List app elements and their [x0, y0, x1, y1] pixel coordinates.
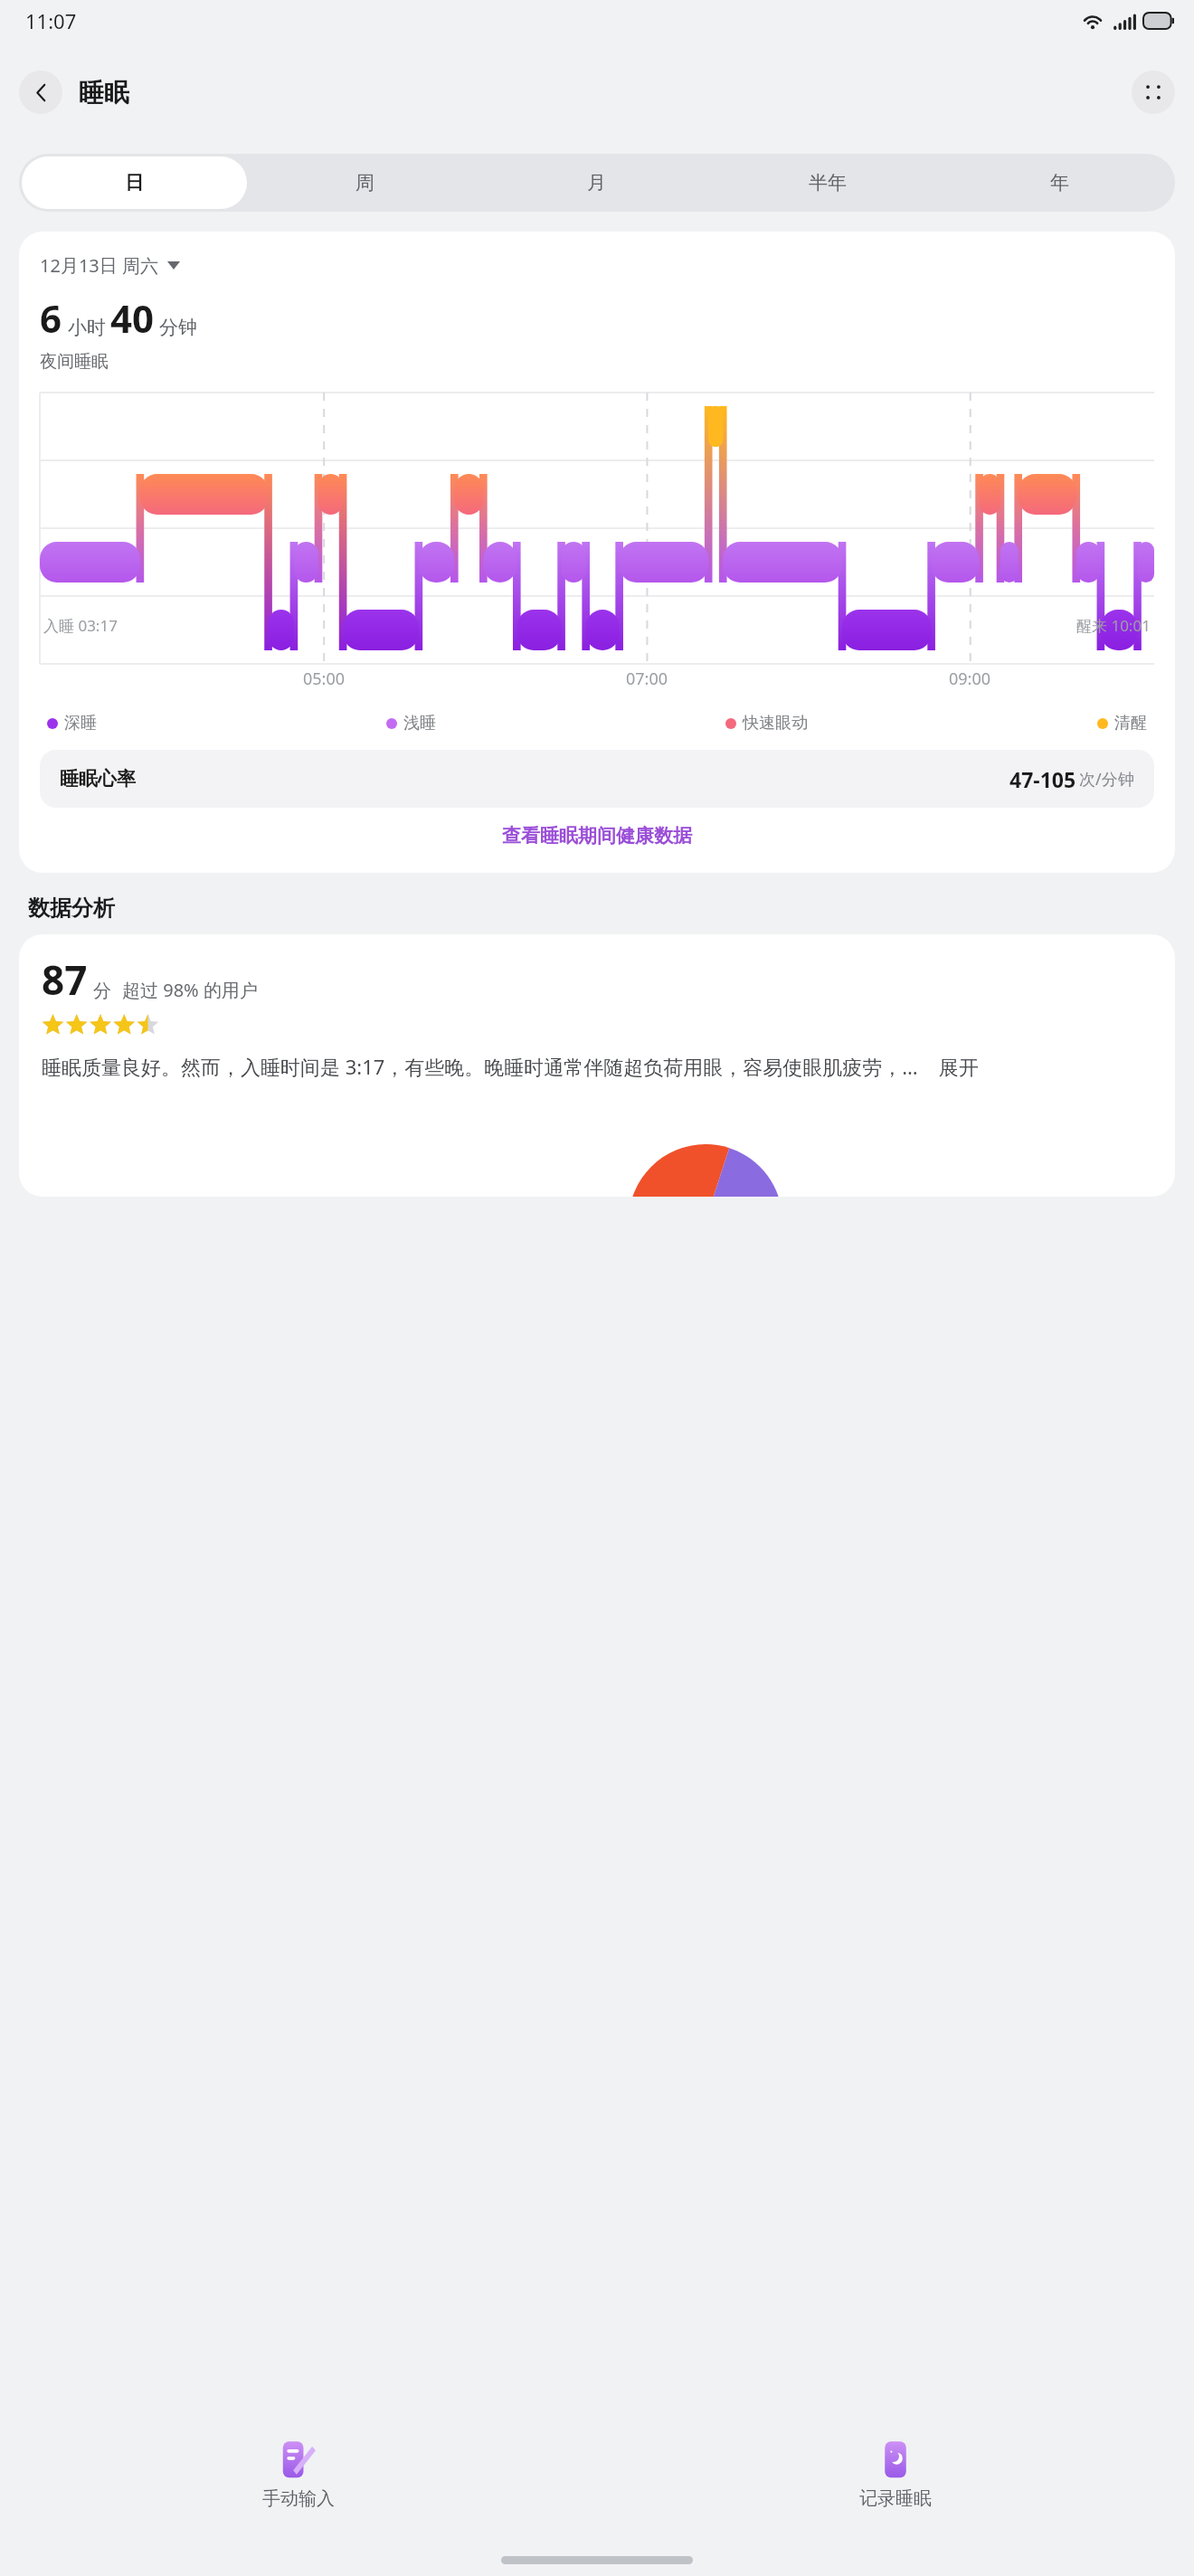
- staticText: 87: [42, 952, 88, 1007]
- staticText: 11:07: [25, 7, 77, 34]
- staticText: 分钟: [159, 316, 197, 339]
- button[interactable]: 年: [946, 156, 1172, 209]
- staticText: 周: [355, 171, 374, 194]
- staticText: 睡眠质量良好。然而，入睡时间是 3:17，有些晚。晚睡时通常伴随超负荷用眼，容易…: [42, 1053, 979, 1080]
- staticText: 日: [125, 171, 144, 194]
- staticText: 小时: [68, 316, 106, 339]
- staticText: 睡眠心率: [60, 767, 136, 791]
- staticText: 月: [587, 171, 606, 194]
- button[interactable]: 睡眠心率: [40, 750, 1154, 808]
- staticText: 夜间睡眠: [40, 351, 109, 373]
- staticText: 查看睡眠期间健康数据: [502, 824, 692, 848]
- staticText: 记录睡眠: [859, 2487, 932, 2510]
- staticText: 深睡: [64, 713, 97, 734]
- staticText: 醒来 10:01: [1076, 615, 1151, 636]
- button[interactable]: 日: [22, 156, 247, 209]
- staticText: 09:00: [949, 668, 991, 690]
- staticText: 05:00: [303, 668, 346, 690]
- staticText: 12月13日 周六: [40, 253, 158, 278]
- staticText: 超过 98% 的用户: [122, 978, 258, 1002]
- button[interactable]: 返回: [19, 71, 62, 114]
- button[interactable]: 查看睡眠期间健康数据: [40, 808, 1154, 864]
- staticText: 快速眼动: [743, 713, 808, 734]
- button[interactable]: 半年: [715, 156, 941, 209]
- button[interactable]: 更多选项: [1132, 71, 1175, 114]
- staticText: 47-105: [1009, 765, 1076, 793]
- staticText: 数据分析: [28, 895, 115, 922]
- staticText: 年: [1050, 171, 1069, 194]
- button[interactable]: 月: [483, 156, 709, 209]
- button[interactable]: 记录睡眠: [597, 2426, 1194, 2543]
- button[interactable]: 周: [252, 156, 478, 209]
- staticText: 07:00: [626, 668, 668, 690]
- staticText: 40: [110, 292, 155, 344]
- staticText: 分: [93, 980, 111, 1002]
- staticText: 浅睡: [403, 713, 436, 734]
- staticText: 6: [40, 292, 62, 344]
- staticText: 次/分钟: [1079, 768, 1134, 791]
- staticText: 半年: [809, 171, 847, 194]
- staticText: 手动输入: [262, 2487, 335, 2510]
- button[interactable]: 手动输入: [0, 2426, 597, 2543]
- staticText: 入睡 03:17: [43, 615, 118, 636]
- staticText: 清醒: [1114, 713, 1147, 734]
- button[interactable]: 12月13日 周六: [40, 253, 180, 278]
- staticText: 睡眠: [79, 77, 129, 109]
